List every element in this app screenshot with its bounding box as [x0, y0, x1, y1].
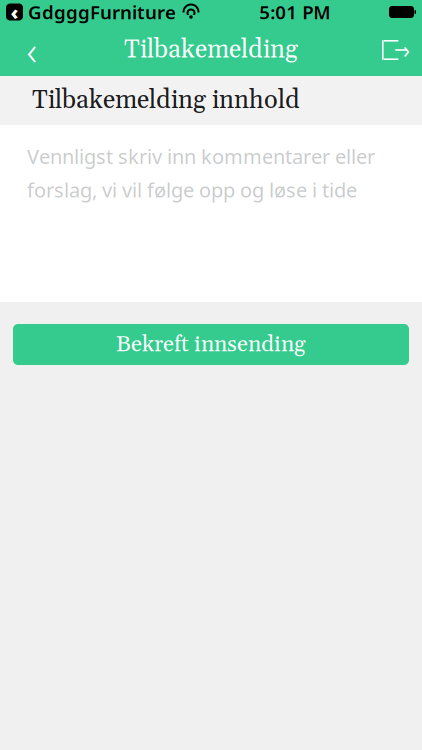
staticText: ‹	[26, 23, 37, 76]
button[interactable]: Bekreft innsending	[13, 324, 409, 365]
button[interactable]: Log out	[366, 24, 422, 76]
staticText: Tilbakemelding	[124, 34, 298, 66]
staticText: Tilbakemelding innhold	[32, 84, 300, 117]
staticText: 5:01 PM	[259, 0, 330, 24]
staticText: ‹	[10, 0, 18, 25]
staticText: ›	[403, 34, 410, 64]
staticText: Vennligst skriv inn kommentarer eller fo…	[27, 143, 375, 203]
staticText: Bekreft innsending	[116, 330, 306, 359]
staticText: GdgggFurniture	[28, 0, 176, 24]
button[interactable]: Back	[0, 24, 56, 76]
